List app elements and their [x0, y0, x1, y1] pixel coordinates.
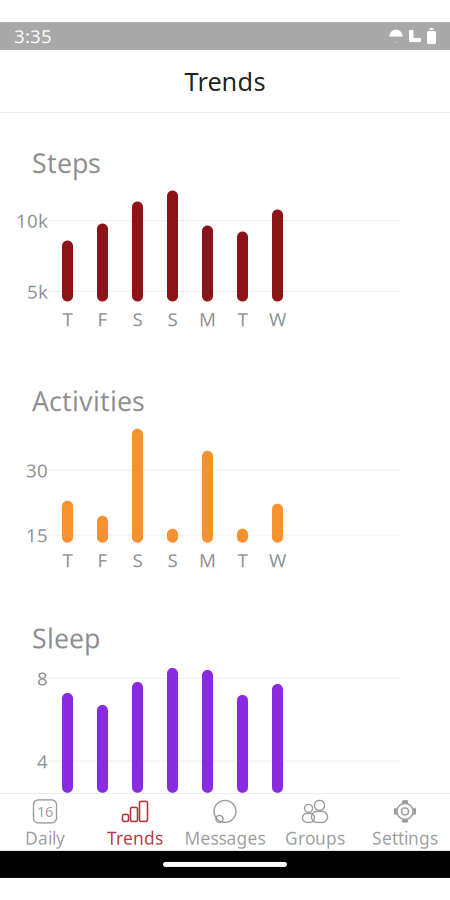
staticText: T — [62, 548, 72, 572]
staticText: M — [199, 548, 216, 572]
staticText: 16 — [37, 802, 53, 821]
staticText: T — [62, 306, 72, 331]
staticText: S — [132, 306, 142, 331]
staticText: S — [132, 548, 142, 572]
staticText: S — [167, 306, 177, 331]
button[interactable]: Settings — [360, 793, 450, 855]
staticText: 15 — [26, 523, 48, 547]
staticText: 30 — [26, 458, 48, 483]
staticText: M — [199, 306, 216, 331]
staticText: W — [269, 306, 286, 331]
staticText: W — [269, 548, 286, 572]
staticText: Steps — [32, 145, 101, 180]
staticText: S — [167, 548, 177, 572]
staticText: 3:35 — [14, 24, 52, 48]
button[interactable]: Messages — [180, 793, 270, 855]
button[interactable]: Trends — [90, 793, 180, 855]
staticText: 8 — [37, 666, 48, 691]
button[interactable]: Groups — [270, 793, 360, 855]
staticText: Activities — [32, 383, 145, 419]
staticText: T — [237, 306, 247, 331]
staticText: 5k — [27, 279, 48, 304]
staticText: Daily — [25, 826, 65, 849]
staticText: Settings — [372, 826, 438, 849]
staticText: Trends — [184, 64, 265, 98]
staticText: Groups — [285, 826, 345, 849]
staticText: F — [97, 306, 107, 331]
staticText: Messages — [184, 826, 265, 849]
staticText: 4 — [37, 749, 48, 773]
button[interactable]: 16 — [0, 793, 90, 855]
staticText: Trends — [107, 826, 163, 849]
staticText: T — [237, 548, 247, 572]
staticText: F — [97, 548, 107, 572]
staticText: 10k — [16, 208, 48, 233]
staticText: Sleep — [32, 620, 100, 656]
